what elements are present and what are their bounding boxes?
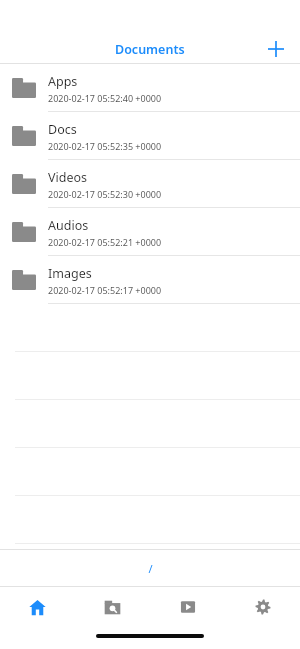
button[interactable]: Home <box>0 587 75 627</box>
staticText: 2020-02-17 05:52:17 +0000 <box>48 284 162 296</box>
staticText: Audios <box>48 217 89 234</box>
staticText: 2020-02-17 05:52:40 +0000 <box>48 92 162 104</box>
button[interactable]: / <box>0 550 300 586</box>
staticText: 2020-02-17 05:52:30 +0000 <box>48 188 162 200</box>
button[interactable]: Docs <box>0 112 300 160</box>
staticText: Apps <box>48 73 78 90</box>
staticText: Documents <box>115 41 185 58</box>
staticText: Videos <box>48 169 88 186</box>
button[interactable]: Videos <box>0 160 300 208</box>
staticText: / <box>148 561 153 576</box>
button[interactable]: Apps <box>0 64 300 112</box>
staticText: 2020-02-17 05:52:21 +0000 <box>48 236 162 248</box>
staticText: Images <box>48 265 92 282</box>
button[interactable]: Images <box>0 256 300 304</box>
button[interactable]: Settings <box>225 587 300 627</box>
button[interactable]: Audios <box>0 208 300 256</box>
button[interactable]: Browse <box>75 587 150 627</box>
button[interactable]: Add <box>261 35 291 63</box>
staticText: Docs <box>48 121 77 138</box>
button[interactable]: Media <box>150 587 225 627</box>
staticText: 2020-02-17 05:52:35 +0000 <box>48 140 162 152</box>
